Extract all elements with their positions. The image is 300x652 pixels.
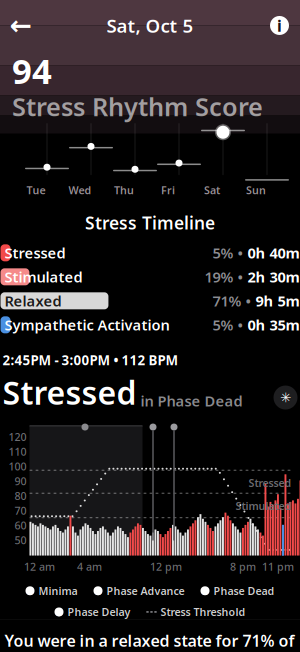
staticText: • [237, 243, 243, 263]
staticText: Phase Advance [106, 584, 184, 598]
staticText: 94 [12, 47, 52, 93]
staticText: ← [9, 10, 31, 41]
staticText: Sun [246, 183, 266, 197]
staticText: Minima [38, 584, 77, 598]
staticText: 100 [8, 459, 26, 473]
staticText: ✳ [280, 390, 291, 405]
staticText: Tue [26, 183, 45, 197]
staticText: 60 [14, 518, 26, 532]
staticText: Sympathetic Activation [4, 315, 169, 335]
staticText: Fri [161, 183, 175, 197]
staticText: ◕ [201, 585, 209, 596]
staticText: You were in a relaxed state for 71% of t… [4, 630, 294, 652]
staticText: 50 [14, 533, 26, 547]
button[interactable]: Relaxed [0, 290, 300, 311]
staticText: ◑ [55, 607, 63, 617]
staticText: • [245, 291, 251, 311]
staticText: 80 [14, 489, 26, 503]
staticText: Thu [114, 183, 134, 197]
staticText: • [237, 315, 243, 335]
staticText: 110 [8, 445, 26, 459]
staticText: 0h 40m [247, 243, 299, 263]
staticText: ● [94, 585, 102, 596]
button[interactable]: Stimulated [0, 266, 300, 287]
staticText: 11 pm [262, 559, 294, 574]
staticText: 2:45PM - 3:00PM • 112 BPM [2, 351, 178, 369]
staticText: 4 am [77, 559, 102, 574]
button[interactable]: Stressed [0, 242, 300, 263]
staticText: 0h 35m [247, 315, 299, 335]
staticText: Sat [204, 183, 220, 197]
button[interactable]: Back [0, 5, 40, 45]
button[interactable]: Sympathetic Activation [0, 314, 300, 335]
staticText: 2h 30m [247, 267, 299, 287]
staticText: Phase Delay [67, 605, 130, 619]
staticText: Phase Dead [213, 584, 274, 598]
staticText: • [237, 267, 243, 287]
button[interactable]: Information [259, 5, 299, 45]
button[interactable]: Insights [273, 385, 297, 409]
staticText: Sat, Oct 5 [106, 13, 193, 38]
staticText: 9h 5m [255, 291, 299, 311]
staticText: 90 [14, 474, 26, 488]
staticText: i [277, 15, 282, 36]
staticText: 8 pm [230, 559, 256, 574]
staticText: 120 [8, 430, 26, 444]
staticText: 12 am [24, 559, 55, 574]
staticText: ◐ [26, 585, 34, 596]
staticText: 19% [204, 267, 233, 287]
staticText: 70 [14, 504, 26, 518]
staticText: Relaxed [4, 291, 61, 311]
staticText: Stimulated [235, 499, 291, 513]
staticText: Stimulated [4, 267, 82, 287]
staticText: 71% [212, 291, 241, 311]
staticText: 5% [212, 315, 233, 335]
staticText: Stress Timeline [85, 211, 215, 234]
staticText: Wed [68, 183, 91, 197]
staticText: Stressed [248, 476, 291, 490]
staticText: Stress Threshold [160, 605, 245, 619]
staticText: Stressed [4, 243, 65, 263]
staticText: Stressed [2, 371, 136, 413]
staticText: Stress Rhythm Score [12, 89, 263, 123]
staticText: 12 pm [150, 559, 182, 574]
staticText: 5% [212, 243, 233, 263]
staticText: in Phase Dead [140, 391, 242, 411]
